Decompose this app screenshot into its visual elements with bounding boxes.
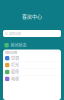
button[interactable]: 窗帘: [3, 69, 61, 76]
staticText: 客房中心: [22, 12, 42, 20]
staticText: 我的设备: [5, 50, 17, 55]
staticText: 空调: [11, 55, 19, 61]
button[interactable]: 空调: [3, 55, 61, 62]
staticText: 窗帘: [11, 69, 19, 75]
button[interactable]: 电视: [3, 76, 61, 82]
staticText: 搜索设备: [9, 31, 21, 36]
staticText: 灯光: [11, 62, 19, 68]
staticText: 电视: [11, 76, 19, 82]
staticText: 房间状态: [10, 42, 26, 48]
button[interactable]: 灯光: [3, 62, 61, 69]
